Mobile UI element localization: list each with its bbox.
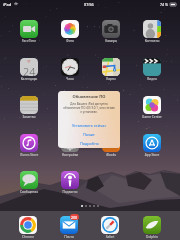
button[interactable]: Карты xyxy=(91,58,131,81)
button[interactable]: Контакты xyxy=(132,20,172,43)
button[interactable]: Календарь xyxy=(9,58,49,81)
staticText: Карты xyxy=(91,77,131,81)
staticText: iPad xyxy=(3,2,12,7)
staticText: Фото xyxy=(50,39,90,43)
staticText: Напоминания xyxy=(50,115,90,119)
button[interactable]: Сообщения xyxy=(9,171,49,194)
staticText: App Store xyxy=(132,153,172,157)
button[interactable]: Почта xyxy=(49,216,89,239)
staticText: Сообщения xyxy=(9,190,49,194)
button[interactable]: iTunes Store xyxy=(9,134,49,157)
button[interactable]: Настройки xyxy=(50,134,90,157)
button[interactable]: Game Center xyxy=(132,96,172,119)
button[interactable]: Камера xyxy=(91,20,131,43)
staticText: 200 xyxy=(71,215,78,220)
button[interactable]: Safari xyxy=(90,216,130,239)
button[interactable]: iBooks xyxy=(91,134,131,157)
staticText: 24 xyxy=(23,64,36,76)
staticText: Календарь xyxy=(9,77,49,81)
button[interactable]: Установить сейчас xyxy=(58,121,120,130)
staticText: Контакты xyxy=(132,39,172,43)
button[interactable]: Позже xyxy=(58,130,120,139)
button[interactable]: Dolphin xyxy=(132,216,172,239)
staticText: Видео xyxy=(132,77,172,81)
button[interactable]: Часы xyxy=(50,58,90,81)
staticText: Камера xyxy=(91,39,131,43)
staticText: iBooks xyxy=(91,153,131,157)
staticText: Game Center xyxy=(132,115,172,119)
staticText: ЧТ xyxy=(27,60,31,64)
staticText: Chrome xyxy=(8,235,48,239)
button[interactable]: Видео xyxy=(132,58,172,81)
button[interactable]: Подкасты xyxy=(50,171,90,194)
staticText: Почта xyxy=(49,235,89,239)
staticText: Обновление ПО xyxy=(58,94,120,100)
staticText: Настройки xyxy=(50,153,90,157)
staticText: Установить сейчас xyxy=(72,123,107,128)
staticText: Позже xyxy=(83,132,95,137)
staticText: iTunes Store xyxy=(9,153,49,157)
button[interactable]: Chrome xyxy=(8,216,48,239)
staticText: Часы xyxy=(50,77,90,81)
button[interactable]: Фото xyxy=(50,20,90,43)
staticText: FaceTime xyxy=(9,39,49,43)
staticText: Safari xyxy=(90,235,130,239)
staticText: 07:56 xyxy=(84,2,94,7)
staticText: 74 % xyxy=(160,2,169,7)
button[interactable]: FaceTime xyxy=(9,20,49,43)
staticText: Dolphin xyxy=(132,235,172,239)
staticText: Подкасты xyxy=(50,190,90,194)
button[interactable]: Подробно xyxy=(58,139,120,148)
staticText: Заметки xyxy=(9,115,49,119)
staticText: Для Вашего iPad доступно обновление ПО i… xyxy=(63,102,115,114)
staticText: Подробно xyxy=(80,141,99,146)
button[interactable]: Заметки xyxy=(9,96,49,119)
button[interactable]: Напоминания xyxy=(50,96,90,119)
button[interactable]: App Store xyxy=(132,134,172,157)
